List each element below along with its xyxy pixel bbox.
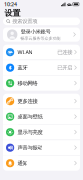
button[interactable]: 蓝牙	[3, 60, 80, 75]
button[interactable]: 更多连接	[3, 94, 80, 109]
staticText: 登录小米账号	[21, 28, 51, 35]
staticText: 10:24	[4, 1, 17, 8]
staticText: WLAN	[17, 49, 32, 56]
button[interactable]: 移动网络	[3, 76, 80, 91]
staticText: 蓝牙	[17, 64, 27, 71]
staticText: 设置	[4, 8, 20, 18]
staticText: 显示与亮度	[17, 129, 42, 135]
staticText: 已开启	[57, 64, 72, 71]
button[interactable]: WLAN	[3, 45, 80, 60]
button[interactable]: 通知	[3, 156, 80, 171]
button[interactable]: 桌面与壁纸	[3, 109, 80, 124]
button[interactable]: 搜索设置项	[3, 17, 80, 25]
staticText: 桌面与壁纸	[17, 113, 42, 120]
staticText: 已连接	[57, 49, 72, 55]
staticText: 搜索设置项	[12, 18, 37, 25]
staticText: 移动网络	[17, 80, 37, 86]
staticText: 更多连接	[17, 98, 37, 104]
staticText: 通知	[17, 160, 27, 166]
button[interactable]: 声音与振动	[3, 140, 80, 155]
staticText: 畅享云服务等众多功能	[21, 36, 61, 41]
button[interactable]: 显示与亮度	[3, 125, 80, 140]
button[interactable]: 登录小米账号	[3, 27, 80, 42]
staticText: 声音与振动	[17, 144, 42, 151]
